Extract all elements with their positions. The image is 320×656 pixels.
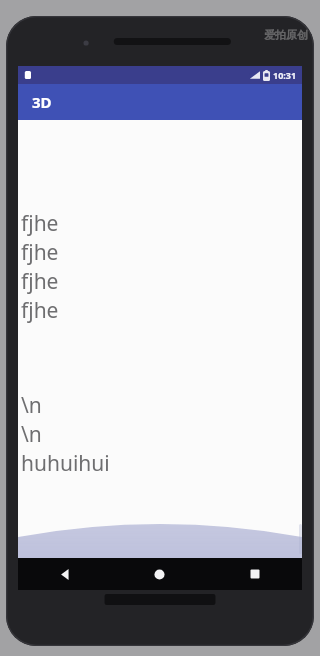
staticText: fjhe — [21, 238, 59, 267]
staticText: fjhe — [21, 267, 59, 296]
button[interactable]: Back — [18, 558, 112, 590]
staticText: 3D — [32, 92, 52, 112]
button[interactable]: Recent apps — [207, 558, 302, 590]
staticText: \n — [21, 420, 42, 449]
button[interactable]: Home — [112, 558, 207, 590]
staticText: fjhe — [21, 296, 59, 325]
staticText: \n — [21, 391, 42, 420]
staticText: 10:31 — [273, 69, 297, 81]
staticText: huhuihui — [21, 449, 110, 478]
button[interactable]: 3D — [18, 84, 302, 120]
staticText: fjhe — [21, 209, 59, 238]
staticText: 爱拍原创 — [264, 28, 308, 42]
